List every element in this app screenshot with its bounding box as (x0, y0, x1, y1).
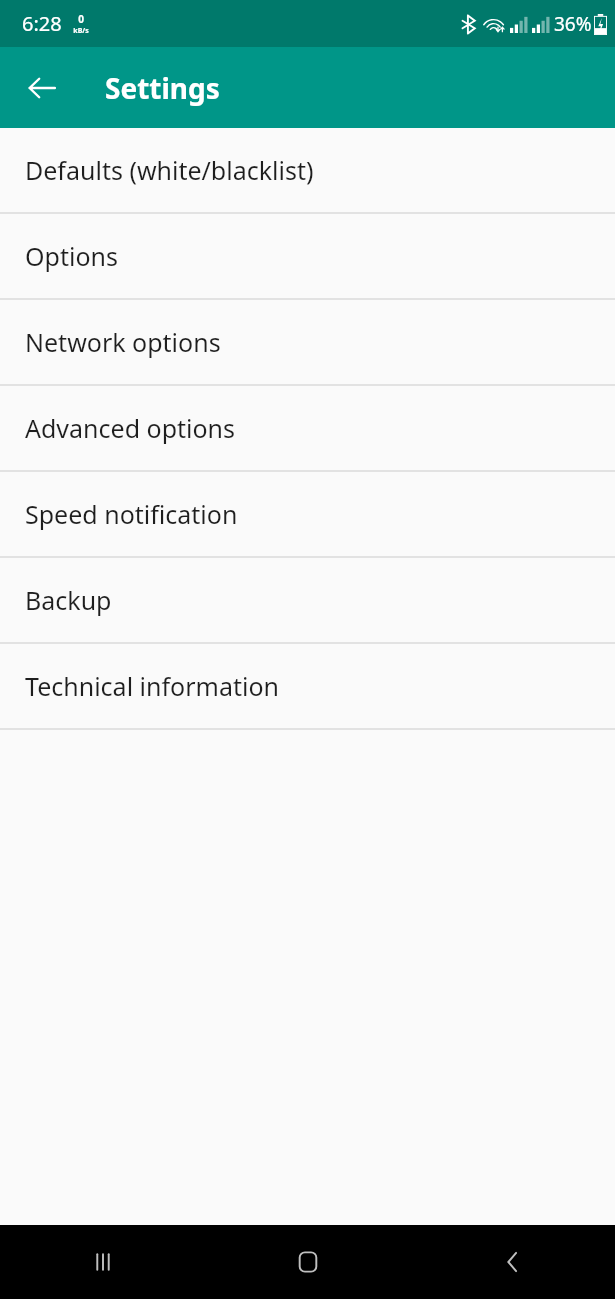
button[interactable]: Home (205, 1225, 410, 1299)
button[interactable]: Network options (0, 300, 615, 384)
staticText: Settings (105, 69, 220, 107)
staticText: Speed notification (25, 497, 238, 531)
staticText: Technical information (25, 669, 279, 703)
button[interactable]: Defaults (white/blacklist) (0, 128, 615, 212)
staticText: Advanced options (25, 411, 236, 445)
button[interactable]: Back (14, 60, 70, 116)
button[interactable]: Back (410, 1225, 615, 1299)
staticText: 6:28 (22, 10, 62, 37)
button[interactable]: Backup (0, 558, 615, 642)
staticText: Backup (25, 583, 112, 617)
button[interactable]: Options (0, 214, 615, 298)
staticText: kB/s (73, 26, 89, 36)
button[interactable]: Recents (0, 1225, 205, 1299)
staticText: Network options (25, 325, 221, 359)
staticText: Defaults (white/blacklist) (25, 153, 314, 187)
button[interactable]: Technical information (0, 644, 615, 728)
staticText: Options (25, 239, 118, 273)
button[interactable]: Advanced options (0, 386, 615, 470)
staticText: 0 (78, 12, 84, 26)
button[interactable]: Speed notification (0, 472, 615, 556)
staticText: 36% (554, 11, 592, 37)
